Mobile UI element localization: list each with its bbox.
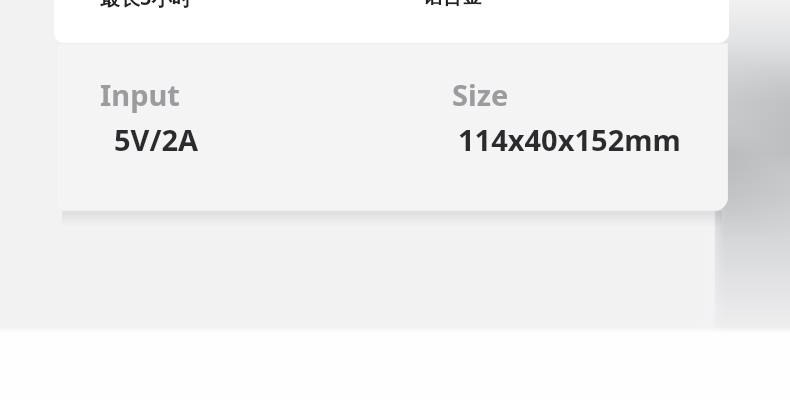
staticText: 5V/2A	[114, 120, 199, 159]
staticText: 铝合金	[422, 0, 482, 9]
button[interactable]: Size	[452, 75, 675, 159]
staticText: Input	[100, 75, 180, 114]
staticText: 最长5小时	[100, 0, 192, 11]
staticText: 114x40x152mm	[458, 120, 681, 159]
button[interactable]: Input	[100, 75, 185, 159]
button[interactable]: Input	[56, 43, 728, 211]
staticText: Size	[452, 75, 509, 114]
button[interactable]: 最长5小时	[54, 0, 729, 43]
other: Product photo edge	[716, 0, 790, 333]
